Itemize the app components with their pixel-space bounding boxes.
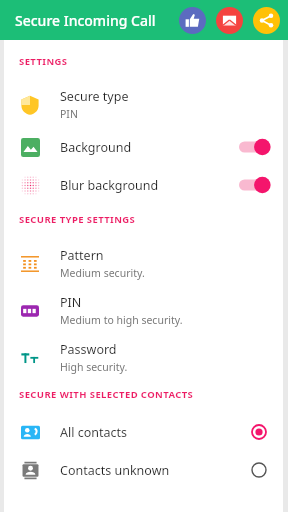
button[interactable]: Blur background (4, 166, 283, 204)
button[interactable]: Secure type (4, 81, 283, 128)
staticText: SECURE WITH SELECTED CONTACTS (19, 388, 194, 401)
button[interactable]: Contacts unknown (4, 451, 283, 489)
staticText: Pattern (60, 247, 104, 264)
staticText: PIN (60, 107, 78, 121)
staticText: All contacts (60, 424, 251, 441)
button[interactable]: All contacts (4, 413, 283, 451)
staticText: PIN (60, 294, 82, 311)
button[interactable]: Mail (216, 7, 243, 34)
staticText: Secure Incoming Call (15, 11, 156, 30)
staticText: Password (60, 341, 117, 358)
button[interactable]: Background (4, 128, 283, 166)
staticText: Secure type (60, 88, 129, 105)
staticText: SETTINGS (19, 55, 68, 68)
button[interactable]: Share (253, 7, 280, 34)
button[interactable]: Pattern (4, 240, 283, 287)
staticText: Medium to high security. (60, 313, 183, 327)
button[interactable]: Like (179, 7, 206, 34)
button[interactable]: Password (4, 334, 283, 381)
staticText: High security. (60, 360, 128, 374)
staticText: Blur background (60, 177, 239, 194)
staticText: Medium security. (60, 266, 145, 280)
button[interactable]: PIN (4, 287, 283, 334)
staticText: Contacts unknown (60, 462, 251, 479)
staticText: SECURE TYPE SETTINGS (19, 213, 136, 226)
staticText: Background (60, 139, 239, 156)
